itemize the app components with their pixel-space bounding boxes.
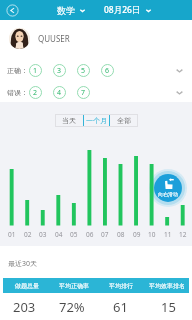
button[interactable]: 错误： [0, 81, 192, 103]
staticText: 一个月 [86, 116, 107, 125]
staticText: 08月26日 [104, 4, 141, 16]
staticText: 61 [113, 298, 128, 316]
staticText: 当天 [62, 116, 76, 125]
button[interactable]: 当天 [55, 114, 83, 127]
staticText: 203 [13, 298, 36, 316]
button[interactable]: 数学 [57, 0, 86, 20]
staticText: 做题总量 [15, 282, 39, 290]
staticText: 06 [86, 230, 94, 239]
staticText: 5 [81, 66, 86, 76]
staticText: 08 [117, 230, 125, 239]
staticText: 数学 [57, 5, 75, 16]
staticText: 04 [55, 230, 63, 239]
staticText: 最近30天 [8, 259, 38, 269]
staticText: 平均排行 [109, 282, 133, 290]
button[interactable]: 全部 [110, 114, 138, 127]
staticText: 6 [105, 66, 110, 76]
staticText: 10 [148, 230, 156, 239]
staticText: 正确： [7, 66, 28, 75]
staticText: 12 [179, 230, 187, 239]
staticText: 2 [33, 88, 38, 98]
staticText: 全部 [117, 116, 131, 125]
staticText: 02 [24, 230, 32, 239]
staticText: 平均效率排名 [149, 282, 185, 290]
button[interactable]: 一个月 [83, 114, 110, 127]
staticText: 平均正确率 [59, 282, 89, 290]
staticText: 3 [57, 66, 62, 76]
button[interactable]: Back [3, 0, 21, 20]
staticText: 01 [8, 230, 16, 239]
staticText: QUUSER [38, 33, 70, 44]
staticText: 05 [70, 230, 78, 239]
staticText: 7 [81, 88, 86, 98]
staticText: 15 [161, 298, 176, 316]
staticText: 03 [39, 230, 47, 239]
button[interactable]: 正确： [0, 59, 192, 81]
staticText: 11 [164, 230, 172, 239]
staticText: 09 [133, 230, 141, 239]
staticText: 4 [57, 88, 62, 98]
staticText: 1 [33, 66, 38, 76]
staticText: 向右滑动 [158, 191, 178, 197]
staticText: 错误： [7, 88, 28, 97]
staticText: 07 [101, 230, 109, 239]
staticText: 72% [59, 298, 85, 316]
button[interactable]: Swipe right [149, 169, 187, 207]
button[interactable]: 08月26日 [104, 0, 152, 20]
